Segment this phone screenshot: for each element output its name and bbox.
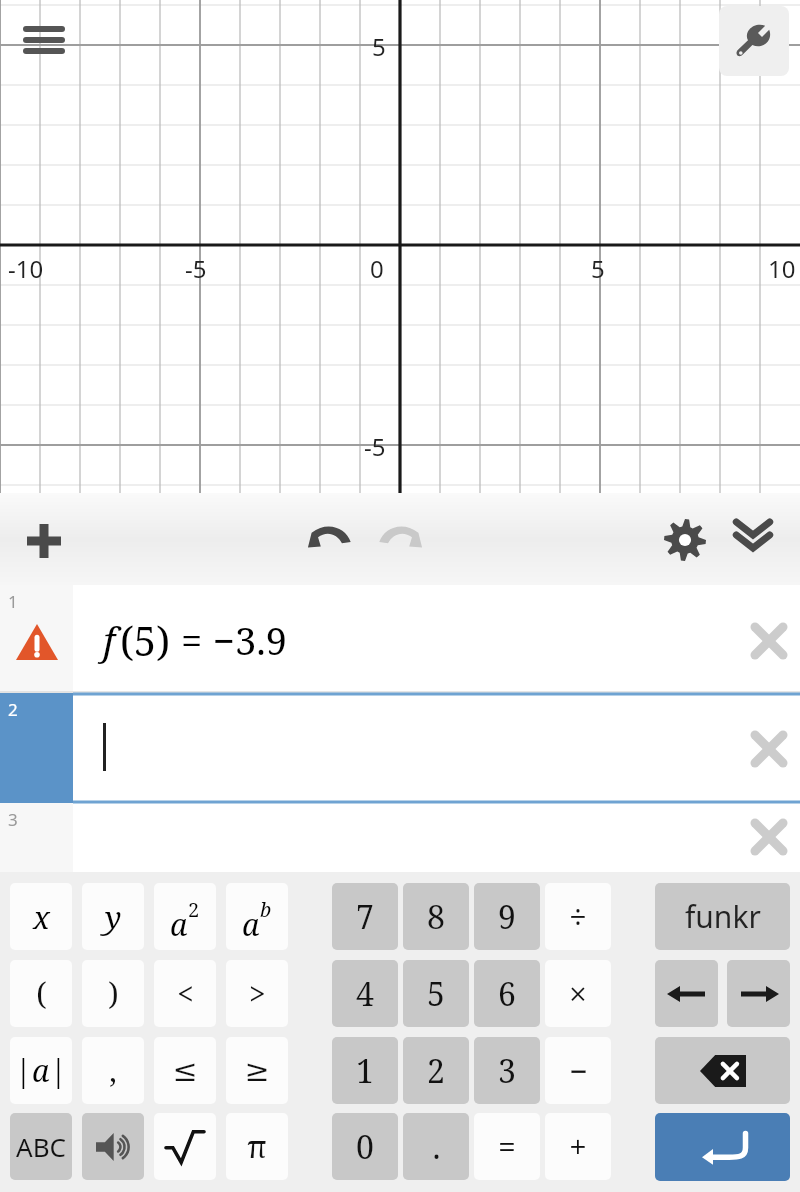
staticText: 3 [8,808,18,831]
button[interactable]: Move right [727,960,790,1027]
staticText: ≥ [244,1053,270,1088]
staticText: a [170,904,188,945]
staticText: , [109,1050,117,1091]
button[interactable]: 8 [403,883,469,950]
staticText: 2 [8,698,18,721]
staticText: 8 [427,895,445,939]
button[interactable]: y [82,883,144,950]
staticText: = [498,1125,516,1169]
staticText: ≤ [172,1053,198,1088]
staticText: 2 [188,896,200,923]
button[interactable] [82,1113,144,1180]
button[interactable]: 3 [0,803,800,872]
button[interactable]: 5 [403,960,469,1027]
button[interactable]: 6 [474,960,540,1027]
button[interactable]: × [545,960,611,1027]
button[interactable]: a [226,883,288,950]
staticText: π [247,1126,267,1167]
button[interactable]: + [545,1113,611,1180]
button[interactable]: Menu [14,10,74,70]
staticText: ( [36,973,47,1014]
button[interactable]: a [154,883,216,950]
staticText: y [105,896,122,938]
staticText: 2 [427,1049,445,1093]
staticText: 1 [8,590,18,613]
staticText: -5 [185,252,207,285]
button[interactable]: Delete [745,813,793,861]
button[interactable]: Settings [654,509,716,571]
staticText: (5) [120,613,171,667]
button[interactable]: 3 [474,1037,540,1104]
staticText: 9 [498,895,516,939]
button[interactable]: funkr [655,883,790,950]
staticText: | [50,1050,67,1091]
staticText: a [32,1050,50,1091]
staticText: funkr [685,896,761,937]
button[interactable]: < [154,960,216,1027]
button[interactable]: 4 [332,960,398,1027]
staticText: ABC [16,1129,66,1164]
button[interactable]: Redo [368,509,432,573]
button[interactable]: Delete [745,617,793,665]
staticText: < [177,973,194,1014]
button[interactable]: . [403,1113,469,1180]
staticText: f [103,614,116,666]
button[interactable]: ÷ [545,883,611,950]
button[interactable] [154,1113,216,1180]
button[interactable]: Undo [298,509,362,573]
staticText: 4 [356,972,374,1016]
staticText: − [569,1049,588,1093]
button[interactable]: Delete [745,725,793,773]
staticText: 0 [370,252,384,285]
staticText: x [33,896,50,938]
staticText: > [249,973,266,1014]
staticText: × [569,972,587,1016]
button[interactable]: , [82,1037,144,1104]
button[interactable]: π [226,1113,288,1180]
staticText: ÷ [569,895,587,939]
button[interactable]: Collapse [722,509,784,571]
button[interactable]: Backspace [655,1037,790,1104]
staticText: 10 [768,252,796,285]
staticText: 5 [427,972,445,1016]
staticText: 1 [356,1049,374,1093]
button[interactable]: 0 [332,1113,398,1180]
button[interactable]: ( [10,960,72,1027]
button[interactable]: 1 [332,1037,398,1104]
staticText: 5 [372,30,386,63]
button[interactable]: Add expression [12,509,76,573]
button[interactable]: Move left [655,960,718,1027]
button[interactable]: 2 [0,693,800,803]
button[interactable]: − [545,1037,611,1104]
button[interactable]: = [474,1113,540,1180]
button[interactable]: 7 [332,883,398,950]
staticText: b [260,896,272,923]
button[interactable]: ≤ [154,1037,216,1104]
button[interactable]: 9 [474,883,540,950]
button[interactable]: 1 [0,585,800,693]
button[interactable]: ABC [10,1113,72,1180]
button[interactable]: > [226,960,288,1027]
staticText: -5 [364,430,386,463]
button[interactable]: Tools [719,6,789,76]
button[interactable]: Enter [655,1113,790,1181]
staticText: 6 [498,972,516,1016]
button[interactable]: x [10,883,72,950]
staticText: 3 [498,1049,516,1093]
staticText: -10 [8,252,44,285]
staticText: −3.9 [213,614,287,666]
staticText: + [569,1125,587,1169]
button[interactable]: | [10,1037,72,1104]
staticText: = [181,614,203,666]
staticText: 5 [591,252,605,285]
staticText: ) [108,973,119,1014]
staticText: a [242,904,260,945]
button[interactable]: ) [82,960,144,1027]
staticText: 7 [356,895,374,939]
staticText: 0 [356,1125,374,1169]
button[interactable]: ≥ [226,1037,288,1104]
staticText: | [15,1050,32,1091]
button[interactable]: 2 [403,1037,469,1104]
staticText: . [432,1125,441,1169]
